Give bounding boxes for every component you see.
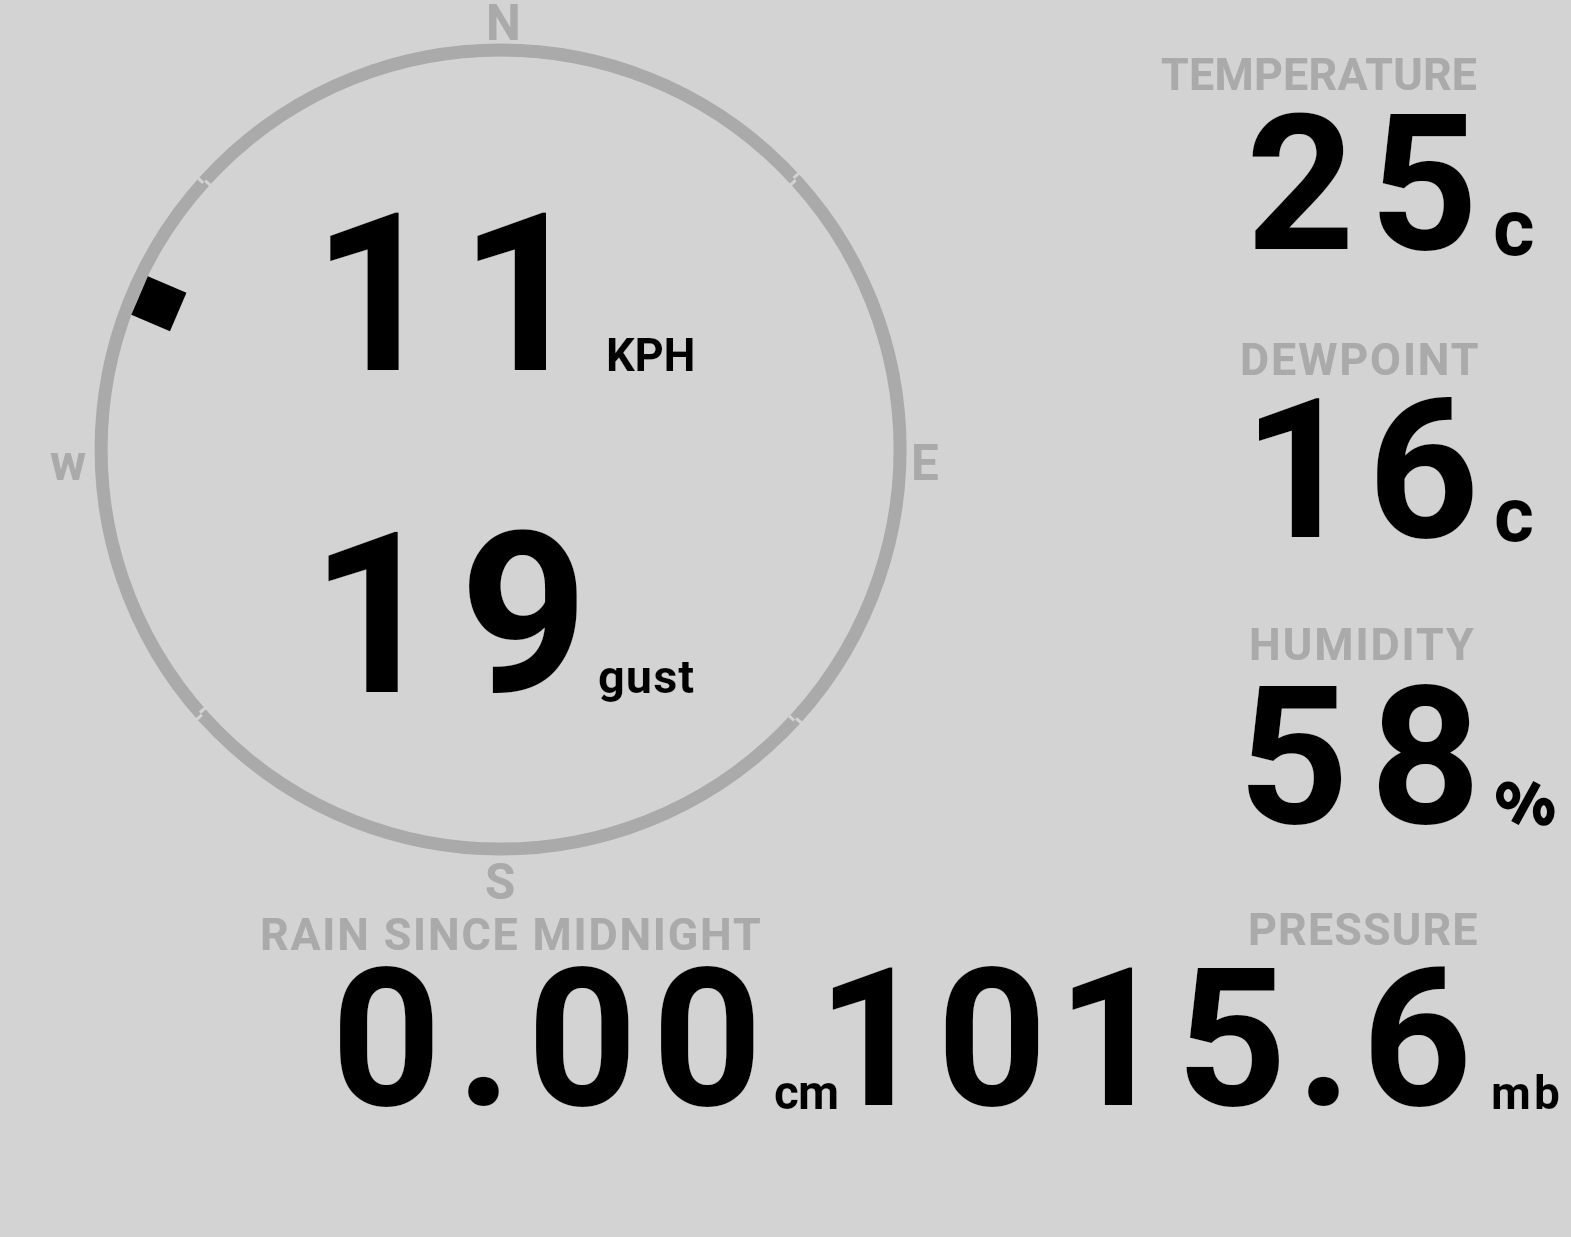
- staticText: gust: [598, 649, 696, 704]
- button[interactable]: Dewpoint: [1150, 325, 1571, 555]
- staticText: 19: [310, 484, 609, 747]
- staticText: mb: [1491, 1066, 1564, 1120]
- staticText: cm: [774, 1065, 839, 1121]
- staticText: DEWPOINT: [1240, 333, 1481, 386]
- staticText: 1015.6: [817, 926, 1482, 1152]
- staticText: w: [50, 434, 87, 492]
- button[interactable]: Pressure: [795, 895, 1571, 1125]
- staticText: HUMIDITY: [1249, 618, 1476, 671]
- staticText: S: [485, 853, 516, 911]
- staticText: c: [1494, 470, 1534, 560]
- button[interactable]: Humidity: [1150, 610, 1571, 840]
- staticText: E: [911, 434, 939, 492]
- staticText: 11: [312, 164, 607, 424]
- staticText: N: [486, 0, 521, 52]
- staticText: KPH: [606, 329, 696, 382]
- button[interactable]: Temperature: [1150, 40, 1571, 270]
- staticText: 16: [1243, 356, 1493, 585]
- button[interactable]: Rain since midnight: [250, 895, 790, 1125]
- staticText: c: [1493, 181, 1535, 274]
- staticText: 58: [1238, 643, 1502, 870]
- button[interactable]: Wind speed and direction: [95, 44, 907, 856]
- staticText: 0.00: [331, 926, 778, 1152]
- staticText: TEMPERATURE: [1161, 48, 1478, 101]
- staticText: 25: [1246, 73, 1493, 295]
- staticText: PRESSURE: [1248, 903, 1479, 956]
- staticText: RAIN SINCE MIDNIGHT: [260, 908, 763, 961]
